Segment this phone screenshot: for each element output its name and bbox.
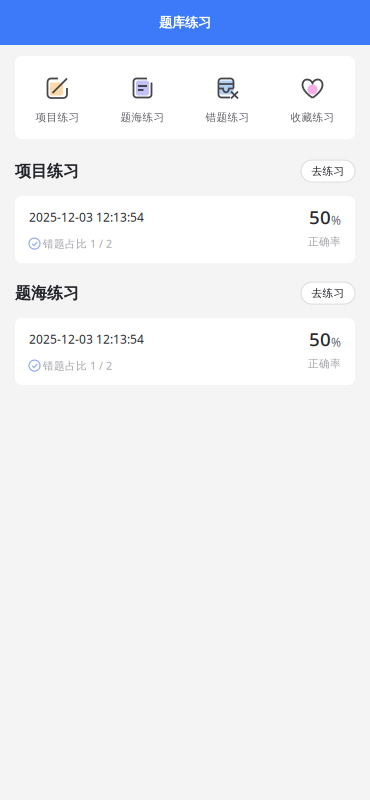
staticText: 去练习 (311, 165, 344, 178)
staticText: 题库练习 (159, 14, 211, 31)
staticText: % (331, 334, 341, 350)
staticText: 正确率 (308, 357, 341, 370)
staticText: 正确率 (308, 235, 341, 248)
button[interactable]: 错题练习 (185, 76, 270, 124)
staticText: 错题占比 1 / 2 (43, 358, 112, 373)
staticText: 50 (309, 327, 331, 351)
button[interactable]: 收藏练习 (270, 76, 355, 124)
staticText: % (331, 212, 341, 228)
button[interactable]: 项目练习 (15, 76, 100, 124)
button[interactable]: 去练习 (301, 160, 355, 182)
staticText: 2025-12-03 12:13:54 (29, 209, 144, 225)
button[interactable]: 去练习 (301, 282, 355, 304)
staticText: 项目练习 (15, 161, 79, 181)
button[interactable]: 题海练习 (100, 76, 185, 124)
staticText: 去练习 (311, 287, 344, 300)
staticText: 错题练习 (205, 111, 249, 124)
staticText: 错题占比 1 / 2 (43, 236, 112, 251)
staticText: 收藏练习 (290, 111, 334, 124)
staticText: 50 (309, 205, 331, 229)
staticText: 题海练习 (15, 283, 79, 303)
staticText: 题海练习 (120, 111, 164, 124)
staticText: 项目练习 (35, 111, 79, 124)
staticText: 2025-12-03 12:13:54 (29, 331, 144, 347)
